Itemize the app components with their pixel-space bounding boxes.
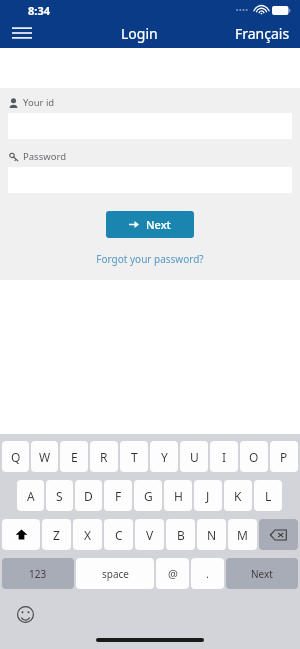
staticText: V <box>146 527 154 543</box>
button[interactable]: X <box>73 519 102 550</box>
button[interactable]: Q <box>2 441 29 472</box>
button[interactable]: @ <box>156 558 189 589</box>
staticText: @ <box>168 566 178 581</box>
staticText: N <box>207 527 217 543</box>
button[interactable]: Shift <box>2 519 40 550</box>
staticText: Z <box>53 527 60 543</box>
staticText: 123 <box>29 567 47 581</box>
button[interactable]: J <box>194 480 222 511</box>
staticText: space <box>102 567 129 581</box>
button[interactable]: D <box>75 480 102 511</box>
button[interactable]: T <box>120 441 148 472</box>
button[interactable]: space <box>76 558 154 589</box>
staticText: A <box>27 488 35 504</box>
button[interactable]: I <box>210 441 238 472</box>
staticText: J <box>206 488 210 504</box>
button[interactable]: Next <box>226 558 298 589</box>
staticText: W <box>39 449 51 465</box>
button[interactable]: F <box>104 480 132 511</box>
staticText: E <box>71 449 78 465</box>
staticText: Y <box>161 449 168 465</box>
staticText: C <box>115 527 123 543</box>
staticText: Login <box>121 24 158 43</box>
staticText: B <box>177 527 185 543</box>
button[interactable]: R <box>90 441 118 472</box>
button[interactable]: K <box>224 480 252 511</box>
staticText: L <box>265 488 272 504</box>
staticText: S <box>56 488 63 504</box>
staticText: Q <box>11 449 21 465</box>
button[interactable]: Forgot your password? <box>92 250 208 268</box>
staticText: Forgot your password? <box>96 252 204 266</box>
staticText: O <box>249 449 259 465</box>
button[interactable]: O <box>240 441 268 472</box>
button[interactable]: E <box>60 441 88 472</box>
staticText: Next <box>146 217 171 232</box>
button[interactable]: H <box>164 480 192 511</box>
button[interactable]: Emoji <box>14 603 36 625</box>
staticText: T <box>131 449 138 465</box>
button[interactable]: C <box>104 519 133 550</box>
button[interactable]: 123 <box>2 558 74 589</box>
staticText: P <box>280 449 288 465</box>
staticText: D <box>84 488 93 504</box>
staticText: G <box>144 488 153 504</box>
staticText: Next <box>251 567 273 581</box>
button[interactable]: A <box>17 480 44 511</box>
staticText: M <box>237 527 248 543</box>
staticText: Your id <box>23 96 55 109</box>
staticText: K <box>234 488 242 504</box>
staticText: R <box>100 449 108 465</box>
button[interactable]: Menu <box>0 18 44 48</box>
staticText: Password <box>23 150 66 163</box>
staticText: U <box>190 449 199 465</box>
button[interactable]: G <box>134 480 162 511</box>
button[interactable]: . <box>191 558 224 589</box>
staticText: I <box>222 449 227 465</box>
button[interactable]: W <box>31 441 58 472</box>
button[interactable]: Z <box>42 519 71 550</box>
button[interactable]: Français <box>235 24 300 43</box>
button[interactable]: N <box>197 519 226 550</box>
button[interactable]: P <box>270 441 298 472</box>
button[interactable]: B <box>166 519 195 550</box>
button[interactable]: Next <box>106 211 194 238</box>
button[interactable]: S <box>46 480 73 511</box>
staticText: Français <box>235 24 290 43</box>
button[interactable]: L <box>254 480 282 511</box>
staticText: F <box>115 488 122 504</box>
button[interactable]: U <box>180 441 208 472</box>
staticText: X <box>84 527 92 543</box>
button[interactable]: V <box>135 519 164 550</box>
staticText: 8:34 <box>28 3 50 18</box>
staticText: . <box>206 566 209 581</box>
button[interactable]: Backspace <box>259 519 298 550</box>
button[interactable]: M <box>228 519 257 550</box>
staticText: H <box>174 488 183 504</box>
button[interactable]: Y <box>150 441 178 472</box>
